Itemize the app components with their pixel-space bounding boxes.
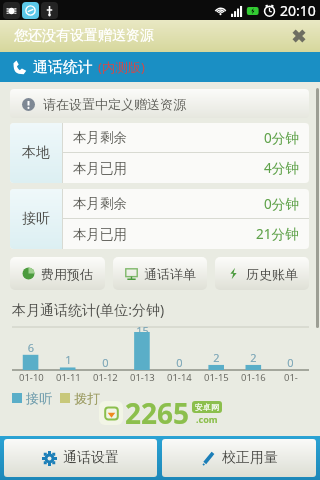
- staticText: 您还没有设置赠送资源: [14, 27, 154, 45]
- button[interactable]: 接听: [10, 189, 309, 249]
- button[interactable]: 历史账单: [215, 257, 309, 290]
- staticText: 历史账单: [246, 266, 298, 282]
- staticText: 安卓网: [195, 402, 219, 412]
- staticText: 0分钟: [264, 195, 299, 213]
- button[interactable]: 通话详单: [113, 257, 207, 290]
- staticText: 0分钟: [264, 129, 299, 147]
- staticText: 本月剩余: [73, 195, 127, 212]
- staticText: (内测版): [98, 58, 145, 76]
- staticText: 请在设置中定义赠送资源: [43, 96, 186, 112]
- staticText: 本地: [22, 144, 50, 162]
- staticText: 费用预估: [41, 266, 93, 282]
- staticText: 6: [12, 340, 50, 355]
- button[interactable]: 校正用量: [162, 439, 316, 477]
- staticText: 2: [198, 350, 235, 365]
- staticText: 本月剩余: [73, 129, 127, 146]
- staticText: 接听: [22, 210, 50, 228]
- staticText: 1: [50, 352, 87, 367]
- staticText: 2: [235, 350, 272, 365]
- button[interactable]: 费用预估: [10, 257, 105, 290]
- button[interactable]: 请在设置中定义赠送资源: [10, 89, 309, 118]
- staticText: 2265: [125, 394, 190, 432]
- button[interactable]: 关闭: [288, 25, 310, 47]
- staticText: 本月通话统计(单位:分钟): [12, 300, 165, 319]
- staticText: 01-10: [19, 371, 44, 384]
- button[interactable]: 您还没有设置赠送资源: [0, 20, 320, 52]
- staticText: 4分钟: [264, 159, 299, 177]
- staticText: .com: [196, 413, 218, 425]
- staticText: 校正用量: [222, 449, 278, 467]
- staticText: 01-12: [93, 371, 118, 384]
- staticText: 15: [124, 323, 161, 332]
- staticText: 接听: [26, 390, 52, 406]
- staticText: 01-: [284, 371, 298, 384]
- staticText: 本月已用: [73, 160, 127, 177]
- staticText: 本月已用: [73, 226, 127, 243]
- staticText: 通话设置: [63, 449, 119, 467]
- staticText: 01-16: [241, 371, 266, 384]
- staticText: 拨打: [74, 390, 100, 406]
- staticText: 0: [272, 355, 309, 370]
- staticText: 0: [161, 355, 198, 370]
- staticText: 01-15: [204, 371, 229, 384]
- staticText: 01-11: [56, 371, 81, 384]
- staticText: 20:10: [280, 1, 316, 20]
- staticText: 01-13: [130, 371, 155, 384]
- button[interactable]: 通话设置: [4, 439, 157, 477]
- button[interactable]: 本地: [10, 123, 309, 183]
- staticText: 通话详单: [144, 266, 196, 282]
- staticText: 01-14: [167, 371, 192, 384]
- staticText: 21分钟: [256, 225, 299, 243]
- staticText: 0: [87, 355, 124, 370]
- staticText: 通话统计: [33, 58, 93, 77]
